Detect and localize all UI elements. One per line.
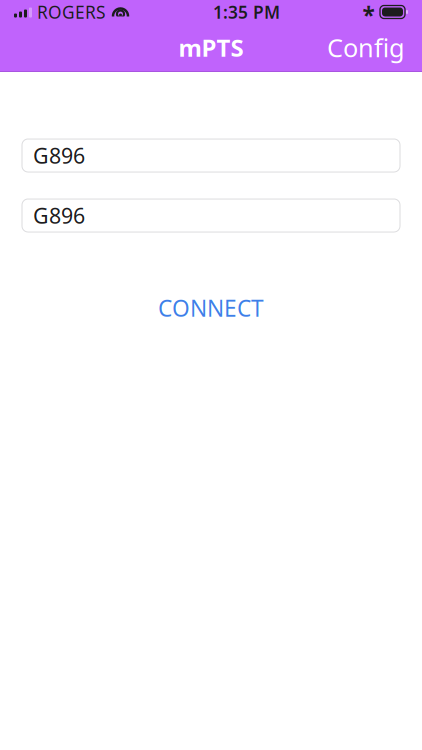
staticText: mPTS — [178, 32, 243, 63]
staticText: CONNECT — [158, 293, 264, 323]
staticText: 1:35 PM — [213, 0, 280, 23]
staticText: Config — [327, 31, 405, 64]
staticText: ROGERS — [37, 0, 106, 23]
button[interactable]: Config — [319, 25, 413, 70]
staticText: G896 — [33, 141, 85, 170]
staticText: * — [362, 0, 374, 30]
button[interactable]: CONNECT — [22, 283, 400, 333]
staticText: G896 — [33, 201, 85, 230]
